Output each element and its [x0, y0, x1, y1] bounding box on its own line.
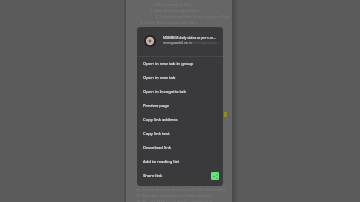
staticText: 26. No. of Pakka Gudd works completed in	[136, 199, 213, 202]
staticText: 2. Yearly Work Completion Rate	[140, 20, 197, 25]
staticText: mnregaweb4.nic.in	[163, 41, 192, 45]
button[interactable]: Copy link text	[137, 127, 223, 141]
button[interactable]: Copy link address	[137, 113, 223, 127]
staticText: /netnrega/ppdyc...	[192, 41, 220, 45]
button[interactable]: MGNREGS daily status as per e-m...	[137, 27, 223, 56]
button[interactable]: Download link	[137, 141, 223, 155]
staticText: 24. Status of works shared to SECURE/eMB…	[136, 187, 226, 192]
button[interactable]: Preview page	[137, 99, 223, 113]
button[interactable]: Open in new tab in group	[137, 57, 223, 71]
staticText: Add to reading list	[143, 159, 179, 165]
staticText: 25. Mandays Generated in Pukka Houses	[136, 193, 211, 198]
staticText: Open in Incognito tab	[143, 89, 187, 95]
staticText: Open in new tab in group	[143, 61, 194, 67]
other: Share	[211, 172, 219, 180]
staticText: Copy link address	[143, 117, 178, 123]
staticText: Download link	[143, 145, 171, 151]
button[interactable]: Open in new tab	[137, 71, 223, 85]
staticText: 3. Consolidated New Work Category Wise	[155, 14, 230, 19]
staticText: 1. Work Category Wise	[152, 2, 193, 7]
staticText: Open in new tab	[143, 75, 176, 81]
staticText: Copy link text	[143, 131, 170, 137]
staticText: Share link	[143, 173, 163, 179]
staticText: 2. New Work Category Wise	[150, 8, 200, 13]
button[interactable]: Open in Incognito tab	[137, 85, 223, 99]
staticText: Preview page	[143, 103, 170, 109]
staticText: MGNREGS daily status as per e-m...	[163, 36, 216, 40]
button[interactable]: Share link	[137, 169, 223, 183]
button[interactable]: Add to reading list	[137, 155, 223, 169]
